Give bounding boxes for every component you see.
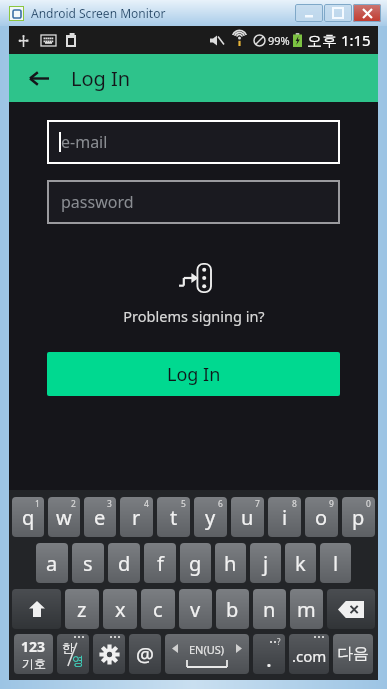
button[interactable]: p <box>342 497 375 537</box>
button[interactable]: z <box>65 589 99 629</box>
staticText: t <box>170 504 178 531</box>
staticText: r <box>132 504 141 531</box>
button[interactable]: c <box>141 589 175 629</box>
staticText: 영 <box>72 653 84 668</box>
staticText: c <box>153 596 163 623</box>
button[interactable]: l <box>320 543 351 583</box>
button[interactable]: d <box>108 543 140 583</box>
button[interactable]: q <box>12 497 44 537</box>
staticText: l <box>333 550 339 577</box>
staticText: 123 <box>21 637 46 656</box>
staticText: a <box>46 550 58 577</box>
staticText: 6 <box>218 498 223 510</box>
staticText: j <box>263 550 269 577</box>
button[interactable]: f <box>144 543 176 583</box>
staticText: p <box>352 504 365 531</box>
button[interactable]: Back <box>21 60 57 96</box>
staticText: EN(US) <box>189 642 225 657</box>
staticText: e-mail <box>61 131 108 153</box>
button[interactable]: b <box>216 589 249 629</box>
staticText: 8 <box>292 498 297 510</box>
button[interactable]: g <box>180 543 211 583</box>
button[interactable]: a <box>36 543 68 583</box>
button[interactable]: x <box>103 589 137 629</box>
button[interactable]: u <box>231 497 264 537</box>
staticText: 다음 <box>337 644 369 664</box>
staticText: 2 <box>71 498 76 510</box>
staticText: 1 <box>35 498 40 510</box>
button[interactable]: w <box>48 497 80 537</box>
staticText: 99% <box>268 33 290 48</box>
staticText: Android Screen Monitor <box>31 5 166 21</box>
button[interactable]: h <box>215 543 246 583</box>
button[interactable]: Window button <box>353 4 381 22</box>
button[interactable]: k <box>285 543 316 583</box>
button[interactable]: y <box>194 497 227 537</box>
button[interactable]: Window button <box>295 4 323 22</box>
button[interactable]: Space <box>165 634 249 674</box>
staticText: 0 <box>366 498 371 510</box>
button[interactable]: o <box>305 497 338 537</box>
button[interactable]: r <box>120 497 153 537</box>
staticText: o <box>315 504 328 531</box>
staticText: s <box>83 550 93 577</box>
button[interactable]: Backspace <box>327 589 375 629</box>
staticText: . <box>266 643 272 673</box>
staticText: Problems signing in? <box>123 306 265 326</box>
staticText: f <box>157 550 164 577</box>
button[interactable]: e-mail <box>47 120 340 164</box>
staticText: 한 <box>62 640 74 655</box>
button[interactable]: n <box>253 589 286 629</box>
staticText: Log In <box>167 362 221 387</box>
staticText: n <box>263 596 276 623</box>
staticText: 9 <box>329 498 334 510</box>
staticText: 기호 <box>22 656 46 671</box>
staticText: Log In <box>71 65 131 92</box>
staticText: i <box>282 504 288 531</box>
button[interactable]: Settings <box>93 634 125 674</box>
button[interactable]: j <box>250 543 281 583</box>
button[interactable]: Window button <box>324 4 352 22</box>
staticText: 4 <box>144 498 149 510</box>
button[interactable]: 한 <box>57 634 89 674</box>
button[interactable]: . <box>253 634 285 674</box>
button[interactable]: v <box>179 589 212 629</box>
button[interactable]: t <box>157 497 190 537</box>
button[interactable]: Shift <box>12 589 61 629</box>
button[interactable]: m <box>290 589 323 629</box>
staticText: 5 <box>181 498 186 510</box>
button[interactable]: 123 <box>14 634 53 674</box>
staticText: m <box>297 596 316 623</box>
staticText: k <box>295 550 306 577</box>
staticText: e <box>94 504 106 531</box>
staticText: q <box>22 504 35 531</box>
staticText: g <box>189 550 202 577</box>
staticText: ? <box>277 636 281 647</box>
button[interactable]: .com <box>289 634 329 674</box>
staticText: u <box>241 504 254 531</box>
other: Sign in <box>177 262 211 294</box>
staticText: x <box>115 596 126 623</box>
staticText: .com <box>292 646 327 666</box>
staticText: v <box>190 596 201 623</box>
staticText: h <box>224 550 237 577</box>
staticText: 오후 1:15 <box>307 30 371 50</box>
button[interactable]: e <box>84 497 116 537</box>
button[interactable]: i <box>268 497 301 537</box>
staticText: w <box>56 504 72 531</box>
staticText: password <box>61 191 134 213</box>
button[interactable]: @ <box>129 634 161 674</box>
button[interactable]: Problems signing in? <box>9 306 378 326</box>
staticText: b <box>226 596 239 623</box>
staticText: d <box>118 550 131 577</box>
staticText: @ <box>136 641 154 668</box>
button[interactable]: s <box>72 543 104 583</box>
staticText: z <box>77 596 87 623</box>
staticText: 3 <box>107 498 112 510</box>
button[interactable]: 다음 <box>333 634 373 674</box>
staticText: 7 <box>255 498 260 510</box>
staticText: y <box>205 504 216 531</box>
button[interactable]: Log In <box>47 352 340 396</box>
button[interactable]: password <box>47 180 340 224</box>
